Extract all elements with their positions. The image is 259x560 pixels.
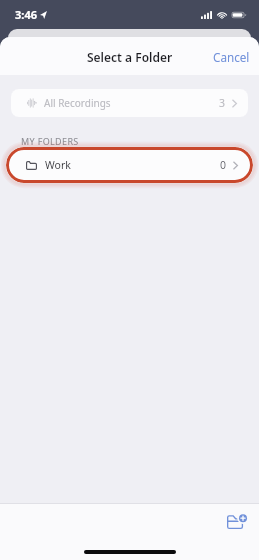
staticText: Select a Folder	[87, 49, 173, 65]
button[interactable]: Work	[6, 147, 253, 183]
staticText: 3:46	[15, 7, 37, 22]
staticText: 0	[220, 158, 227, 172]
staticText: Cancel	[213, 49, 250, 65]
staticText: 3	[219, 96, 226, 110]
button[interactable]: All Recordings	[11, 89, 248, 117]
staticText: MY FOLDERS	[21, 135, 79, 147]
staticText: All Recordings	[44, 96, 111, 110]
button[interactable]: Cancel	[199, 42, 259, 72]
staticText: Work	[45, 158, 71, 172]
button[interactable]: New Folder	[222, 506, 252, 536]
